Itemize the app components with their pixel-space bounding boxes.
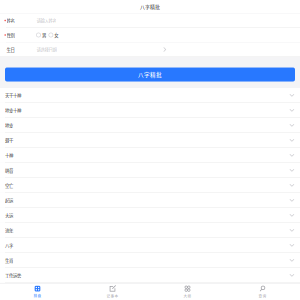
button[interactable]: 记事本: [75, 284, 150, 300]
button[interactable]: 排盘: [0, 284, 75, 300]
staticText: 查询: [258, 293, 266, 298]
staticText: 排盘: [33, 293, 41, 298]
staticText: 纳音: [5, 167, 13, 173]
staticText: 地支十神: [5, 107, 21, 113]
button[interactable]: 生肖: [0, 253, 300, 267]
staticText: 地支: [5, 122, 13, 128]
button[interactable]: 起运: [0, 193, 300, 207]
button[interactable]: 流年: [0, 223, 300, 237]
button[interactable]: 藏干: [0, 133, 300, 147]
staticText: 大运: [5, 212, 13, 218]
button[interactable]: 纳音: [0, 163, 300, 177]
staticText: 流年: [5, 227, 13, 233]
staticText: 生日: [6, 46, 14, 53]
staticText: 男: [42, 32, 46, 38]
staticText: 工作运势: [5, 272, 21, 278]
button[interactable]: 查询: [225, 284, 300, 300]
staticText: 天干十神: [5, 92, 21, 98]
staticText: 起运: [5, 197, 13, 203]
staticText: 藏干: [5, 137, 13, 143]
button[interactable]: 十神: [0, 148, 300, 162]
staticText: 生肖: [5, 257, 13, 263]
staticText: 请选择日期: [36, 46, 56, 53]
staticText: 大师: [183, 293, 191, 298]
staticText: 女: [54, 32, 58, 38]
button[interactable]: 空亡: [0, 178, 300, 192]
staticText: 姓名: [6, 17, 14, 24]
button[interactable]: 天干十神: [0, 88, 300, 102]
staticText: 八字精批: [140, 3, 160, 10]
staticText: 性别: [6, 32, 14, 38]
button[interactable]: 八字: [0, 238, 300, 252]
button[interactable]: 大师: [150, 284, 225, 300]
button[interactable]: 八字精批: [5, 67, 295, 81]
button[interactable]: 地支十神: [0, 103, 300, 117]
staticText: 记事本: [106, 293, 118, 298]
button[interactable]: 地支: [0, 118, 300, 132]
staticText: 八字: [5, 242, 13, 248]
staticText: 十神: [5, 152, 13, 158]
button[interactable]: 工作运势: [0, 268, 300, 282]
staticText: 请输入姓名: [36, 17, 56, 24]
staticText: 空亡: [5, 182, 13, 188]
button[interactable]: 大运: [0, 208, 300, 222]
staticText: 八字精批: [138, 70, 162, 78]
